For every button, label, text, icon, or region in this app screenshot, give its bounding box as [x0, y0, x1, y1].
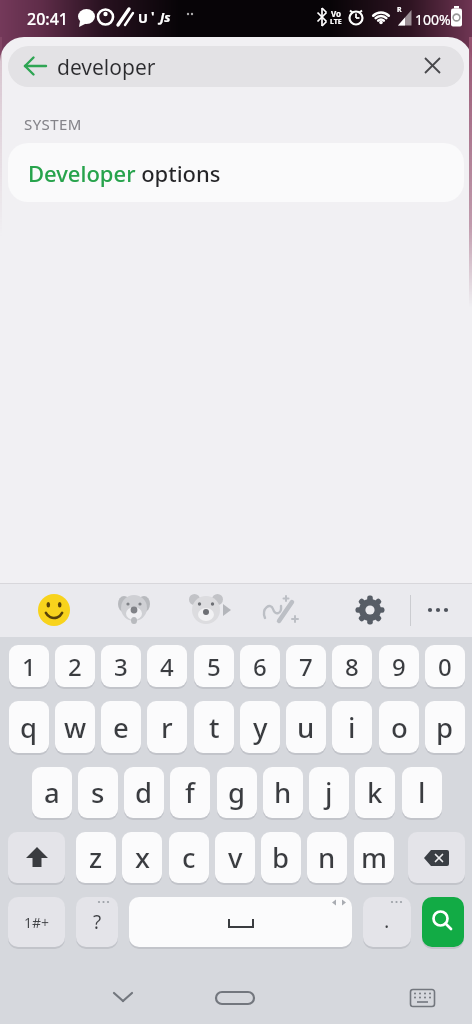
- button[interactable]: 7: [286, 645, 326, 687]
- staticText: y: [253, 709, 268, 746]
- button[interactable]: [410, 989, 435, 1007]
- staticText: i: [348, 709, 356, 746]
- button[interactable]: 1#+: [8, 897, 65, 947]
- staticText: 1: [22, 650, 36, 683]
- staticText: 5: [207, 650, 221, 683]
- staticText: Js: [160, 8, 171, 26]
- button[interactable]: [110, 988, 138, 1006]
- staticText: U: [138, 9, 148, 27]
- button[interactable]: w: [55, 701, 95, 753]
- staticText: 1#+: [24, 913, 50, 932]
- staticText: e: [113, 709, 129, 746]
- button[interactable]: [215, 991, 255, 1005]
- staticText: 20:41: [27, 8, 68, 30]
- staticText: t: [209, 709, 220, 746]
- staticText: j: [325, 774, 333, 811]
- button[interactable]: g: [217, 767, 257, 818]
- button[interactable]: Developer options: [8, 143, 464, 202]
- button[interactable]: [408, 832, 465, 883]
- staticText: developer: [57, 53, 156, 82]
- button[interactable]: y: [240, 701, 280, 753]
- button[interactable]: [425, 58, 440, 73]
- button[interactable]: [189, 593, 235, 627]
- staticText: v: [228, 839, 243, 876]
- button[interactable]: .: [363, 897, 411, 947]
- staticText: ': [151, 7, 155, 25]
- staticText: f: [185, 774, 195, 811]
- staticText: k: [367, 774, 383, 811]
- staticText: Developer options: [28, 158, 221, 188]
- staticText: r: [161, 709, 173, 746]
- staticText: 2: [68, 650, 82, 683]
- button[interactable]: 0: [425, 645, 465, 687]
- button[interactable]: 4: [147, 645, 187, 687]
- button[interactable]: 2: [55, 645, 95, 687]
- staticText: q: [20, 709, 38, 746]
- button[interactable]: c: [169, 832, 209, 883]
- button[interactable]: n: [307, 832, 347, 883]
- button[interactable]: e: [101, 701, 141, 753]
- staticText: 9: [392, 650, 406, 683]
- button[interactable]: j: [309, 767, 349, 818]
- button[interactable]: m: [354, 832, 394, 883]
- staticText: .: [384, 907, 390, 934]
- staticText: b: [272, 839, 290, 876]
- button[interactable]: 9: [379, 645, 419, 687]
- button[interactable]: i: [332, 701, 372, 753]
- staticText: d: [135, 774, 153, 811]
- button[interactable]: ?: [76, 897, 118, 947]
- staticText: n: [318, 839, 336, 876]
- button[interactable]: [422, 897, 464, 947]
- button[interactable]: [129, 897, 352, 947]
- button[interactable]: d: [124, 767, 164, 818]
- button[interactable]: [117, 593, 151, 627]
- staticText: 7: [299, 650, 313, 683]
- button[interactable]: 3: [101, 645, 141, 687]
- button[interactable]: z: [76, 832, 116, 883]
- button[interactable]: o: [379, 701, 419, 753]
- staticText: g: [228, 774, 246, 811]
- staticText: 3: [114, 650, 128, 683]
- staticText: u: [297, 709, 315, 746]
- staticText: l: [418, 774, 426, 811]
- staticText: x: [135, 839, 150, 876]
- button[interactable]: a: [32, 767, 72, 818]
- staticText: SYSTEM: [24, 114, 82, 134]
- button[interactable]: u: [286, 701, 326, 753]
- button[interactable]: s: [78, 767, 118, 818]
- button[interactable]: v: [215, 832, 255, 883]
- button[interactable]: [426, 600, 450, 620]
- staticText: ?: [93, 909, 102, 935]
- button[interactable]: 5: [194, 645, 234, 687]
- button[interactable]: [8, 832, 65, 883]
- staticText: LTE: [330, 17, 342, 27]
- button[interactable]: b: [261, 832, 301, 883]
- staticText: a: [44, 774, 60, 811]
- staticText: Vo: [331, 8, 342, 19]
- button[interactable]: l: [402, 767, 442, 818]
- staticText: m: [361, 839, 388, 876]
- button[interactable]: 1: [9, 645, 49, 687]
- button[interactable]: k: [355, 767, 395, 818]
- button[interactable]: x: [122, 832, 162, 883]
- staticText: 6: [253, 650, 267, 683]
- staticText: s: [91, 774, 105, 811]
- button[interactable]: f: [170, 767, 210, 818]
- staticText: p: [436, 709, 454, 746]
- button[interactable]: [37, 593, 71, 627]
- button[interactable]: p: [425, 701, 465, 753]
- staticText: c: [182, 839, 196, 876]
- staticText: 8: [345, 650, 359, 683]
- button[interactable]: [262, 592, 300, 628]
- staticText: 4: [160, 650, 174, 683]
- button[interactable]: 6: [240, 645, 280, 687]
- button[interactable]: 8: [332, 645, 372, 687]
- staticText: w: [64, 709, 87, 746]
- staticText: 0: [438, 650, 452, 683]
- button[interactable]: r: [147, 701, 187, 753]
- button[interactable]: q: [9, 701, 49, 753]
- button[interactable]: t: [194, 701, 234, 753]
- button[interactable]: h: [263, 767, 303, 818]
- button[interactable]: [354, 594, 386, 626]
- button[interactable]: [8, 46, 464, 87]
